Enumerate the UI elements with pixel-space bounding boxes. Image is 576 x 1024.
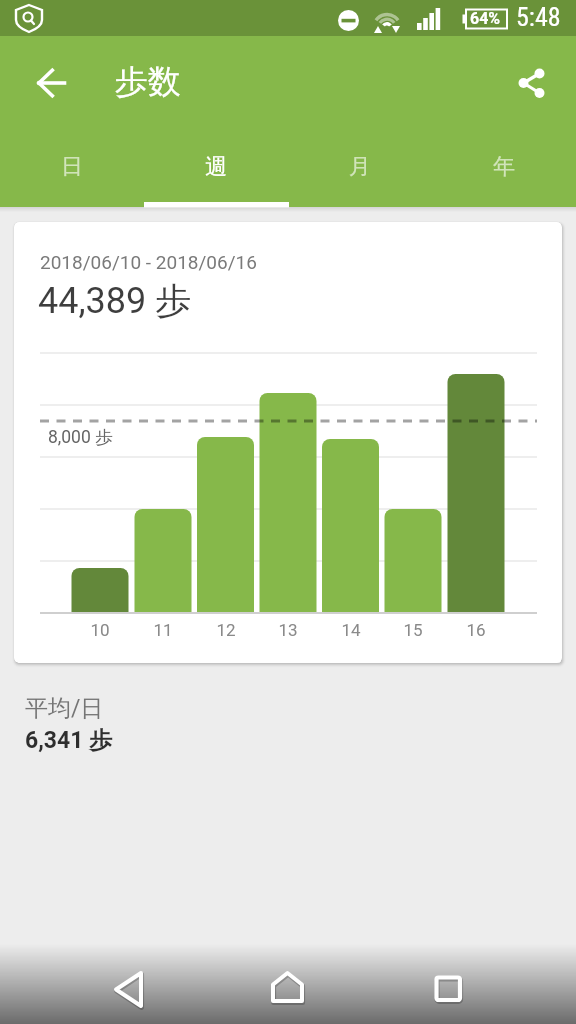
staticText: 歩数 — [115, 61, 181, 103]
staticText: 12 — [206, 620, 246, 640]
button[interactable]: 日 — [0, 140, 144, 207]
staticText: 年 — [493, 153, 515, 181]
button[interactable]: 年 — [432, 140, 576, 207]
staticText: 週 — [205, 153, 227, 181]
button[interactable]: 月 — [288, 140, 432, 207]
button[interactable] — [507, 59, 555, 107]
staticText: 6,341 歩 — [25, 726, 113, 755]
staticText: 13 — [268, 620, 308, 640]
button[interactable] — [27, 59, 75, 107]
staticText: 44,389 歩 — [38, 278, 192, 323]
button[interactable] — [262, 973, 314, 1024]
staticText: 10 — [80, 620, 120, 640]
staticText: 8,000 歩 — [48, 426, 113, 448]
staticText: 2018/06/10 - 2018/06/16 — [40, 251, 257, 273]
staticText: 11 — [143, 620, 183, 640]
button[interactable] — [420, 974, 472, 1024]
staticText: 15 — [393, 620, 433, 640]
staticText: 64% — [470, 9, 501, 28]
staticText: 16 — [456, 620, 496, 640]
staticText: 日 — [61, 153, 83, 181]
button[interactable] — [104, 970, 156, 1022]
staticText: 月 — [349, 153, 371, 181]
staticText: 平均/日 — [25, 694, 104, 723]
button[interactable]: 週 — [144, 140, 288, 207]
staticText: 14 — [331, 620, 371, 640]
staticText: 5:48 — [516, 2, 561, 32]
